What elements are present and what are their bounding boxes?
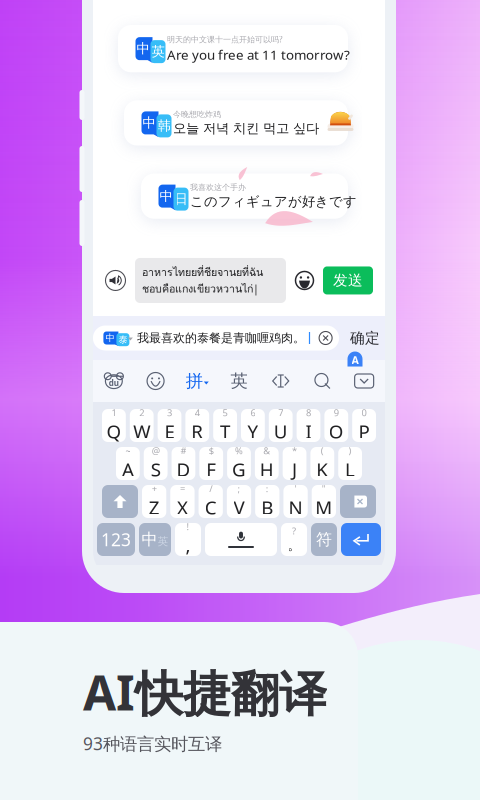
staticText: 拼: [186, 370, 203, 392]
button[interactable]: Move cursor: [260, 370, 302, 392]
button[interactable]: *: [283, 447, 306, 480]
staticText: I: [305, 419, 311, 444]
staticText: このフィギュアが好きです: [190, 193, 357, 210]
staticText: 4: [195, 406, 200, 419]
staticText: 。: [287, 537, 300, 553]
button[interactable]: /: [199, 485, 223, 518]
staticText: AI快捷翻译: [83, 660, 327, 724]
button[interactable]: &: [255, 447, 279, 480]
staticText: M: [315, 495, 332, 520]
staticText: A: [122, 457, 134, 482]
staticText: 中: [136, 40, 149, 57]
staticText: R: [191, 419, 203, 444]
button[interactable]: 发送: [323, 266, 373, 294]
button[interactable]: 1: [102, 409, 126, 442]
staticText: 1: [111, 406, 116, 419]
button[interactable]: Key: [205, 523, 277, 556]
button[interactable]: 8: [297, 409, 320, 442]
staticText: +: [152, 482, 157, 495]
button[interactable]: 123: [97, 523, 135, 556]
button[interactable]: Key: [340, 485, 376, 518]
staticText: #: [180, 444, 186, 457]
staticText: ~: [125, 444, 130, 457]
button[interactable]: 2: [130, 409, 154, 442]
button[interactable]: ": [312, 485, 336, 518]
staticText: 韩: [157, 118, 170, 134]
button[interactable]: Key: [341, 523, 381, 556]
staticText: 确定: [350, 329, 380, 347]
button[interactable]: Voice input: [105, 270, 126, 291]
button[interactable]: 6: [241, 409, 265, 442]
button[interactable]: Key: [102, 485, 138, 518]
staticText: A: [351, 353, 358, 367]
staticText: 中: [105, 332, 114, 344]
staticText: 中: [141, 530, 157, 549]
staticText: 93种语言实时互译: [83, 732, 222, 755]
staticText: @: [152, 444, 160, 457]
button[interactable]: 0: [352, 409, 376, 442]
staticText: (: [321, 444, 324, 457]
staticText: Are you free at 11 tomorrow?: [167, 46, 350, 63]
staticText: =: [180, 482, 185, 495]
button[interactable]: ): [338, 447, 362, 480]
button[interactable]: !: [175, 523, 201, 556]
staticText: ": [322, 482, 326, 495]
button[interactable]: ?: [281, 523, 307, 556]
staticText: Y: [247, 419, 258, 444]
staticText: 符: [316, 530, 332, 549]
staticText: X: [177, 495, 188, 520]
button[interactable]: (: [310, 447, 334, 480]
staticText: C: [205, 495, 217, 520]
staticText: %: [235, 444, 243, 457]
button[interactable]: :: [255, 485, 279, 518]
staticText: 英: [151, 43, 164, 60]
button[interactable]: Search: [302, 370, 343, 392]
button[interactable]: 确定: [339, 329, 391, 347]
button[interactable]: 3: [158, 409, 181, 442]
staticText: 泰: [118, 334, 127, 345]
staticText: &: [263, 444, 270, 457]
button[interactable]: ~: [116, 447, 140, 480]
staticText: 我喜欢这个手办: [190, 182, 246, 192]
button[interactable]: 4: [185, 409, 209, 442]
button[interactable]: %: [227, 447, 251, 480]
button[interactable]: 英: [218, 370, 260, 392]
staticText: 中: [159, 188, 172, 204]
staticText: 英: [157, 535, 168, 548]
button[interactable]: 7: [269, 409, 293, 442]
staticText: 5: [223, 406, 228, 419]
button[interactable]: =: [170, 485, 195, 518]
button[interactable]: $: [199, 447, 223, 480]
button[interactable]: 9: [324, 409, 348, 442]
button[interactable]: ': [283, 485, 308, 518]
staticText: K: [316, 457, 328, 482]
staticText: Z: [149, 495, 160, 520]
button[interactable]: @: [144, 447, 168, 480]
button[interactable]: Key: [139, 523, 171, 556]
staticText: G: [232, 457, 246, 482]
staticText: P: [359, 419, 370, 444]
button[interactable]: #: [172, 447, 195, 480]
staticText: H: [260, 457, 274, 482]
staticText: L: [345, 457, 355, 482]
button[interactable]: +: [142, 485, 166, 518]
staticText: ): [349, 444, 352, 457]
button[interactable]: 5: [213, 409, 237, 442]
button[interactable]: 符: [311, 523, 337, 556]
staticText: 明天的中文课十一点开始可以吗?: [167, 34, 282, 45]
button[interactable]: Emoji: [135, 370, 176, 392]
button[interactable]: Baidu: [93, 370, 135, 392]
button[interactable]: ;: [227, 485, 251, 518]
button[interactable]: 拼: [176, 370, 218, 392]
button[interactable]: Hide keyboard: [343, 370, 385, 392]
staticText: 今晚想吃炸鸡: [173, 109, 221, 119]
staticText: อาหารไทยยที่ชียจานยที่ฉันชอบคือแกงเขียวห…: [142, 264, 263, 297]
staticText: W: [133, 419, 150, 444]
button[interactable]: Emoji: [295, 271, 314, 290]
staticText: V: [233, 495, 244, 520]
staticText: 7: [278, 406, 283, 419]
staticText: 发送: [333, 271, 363, 289]
staticText: 0: [362, 406, 367, 419]
button[interactable]: Clear: [318, 330, 333, 345]
staticText: 오늘 저녁 치킨 먹고 싶다: [173, 120, 319, 137]
